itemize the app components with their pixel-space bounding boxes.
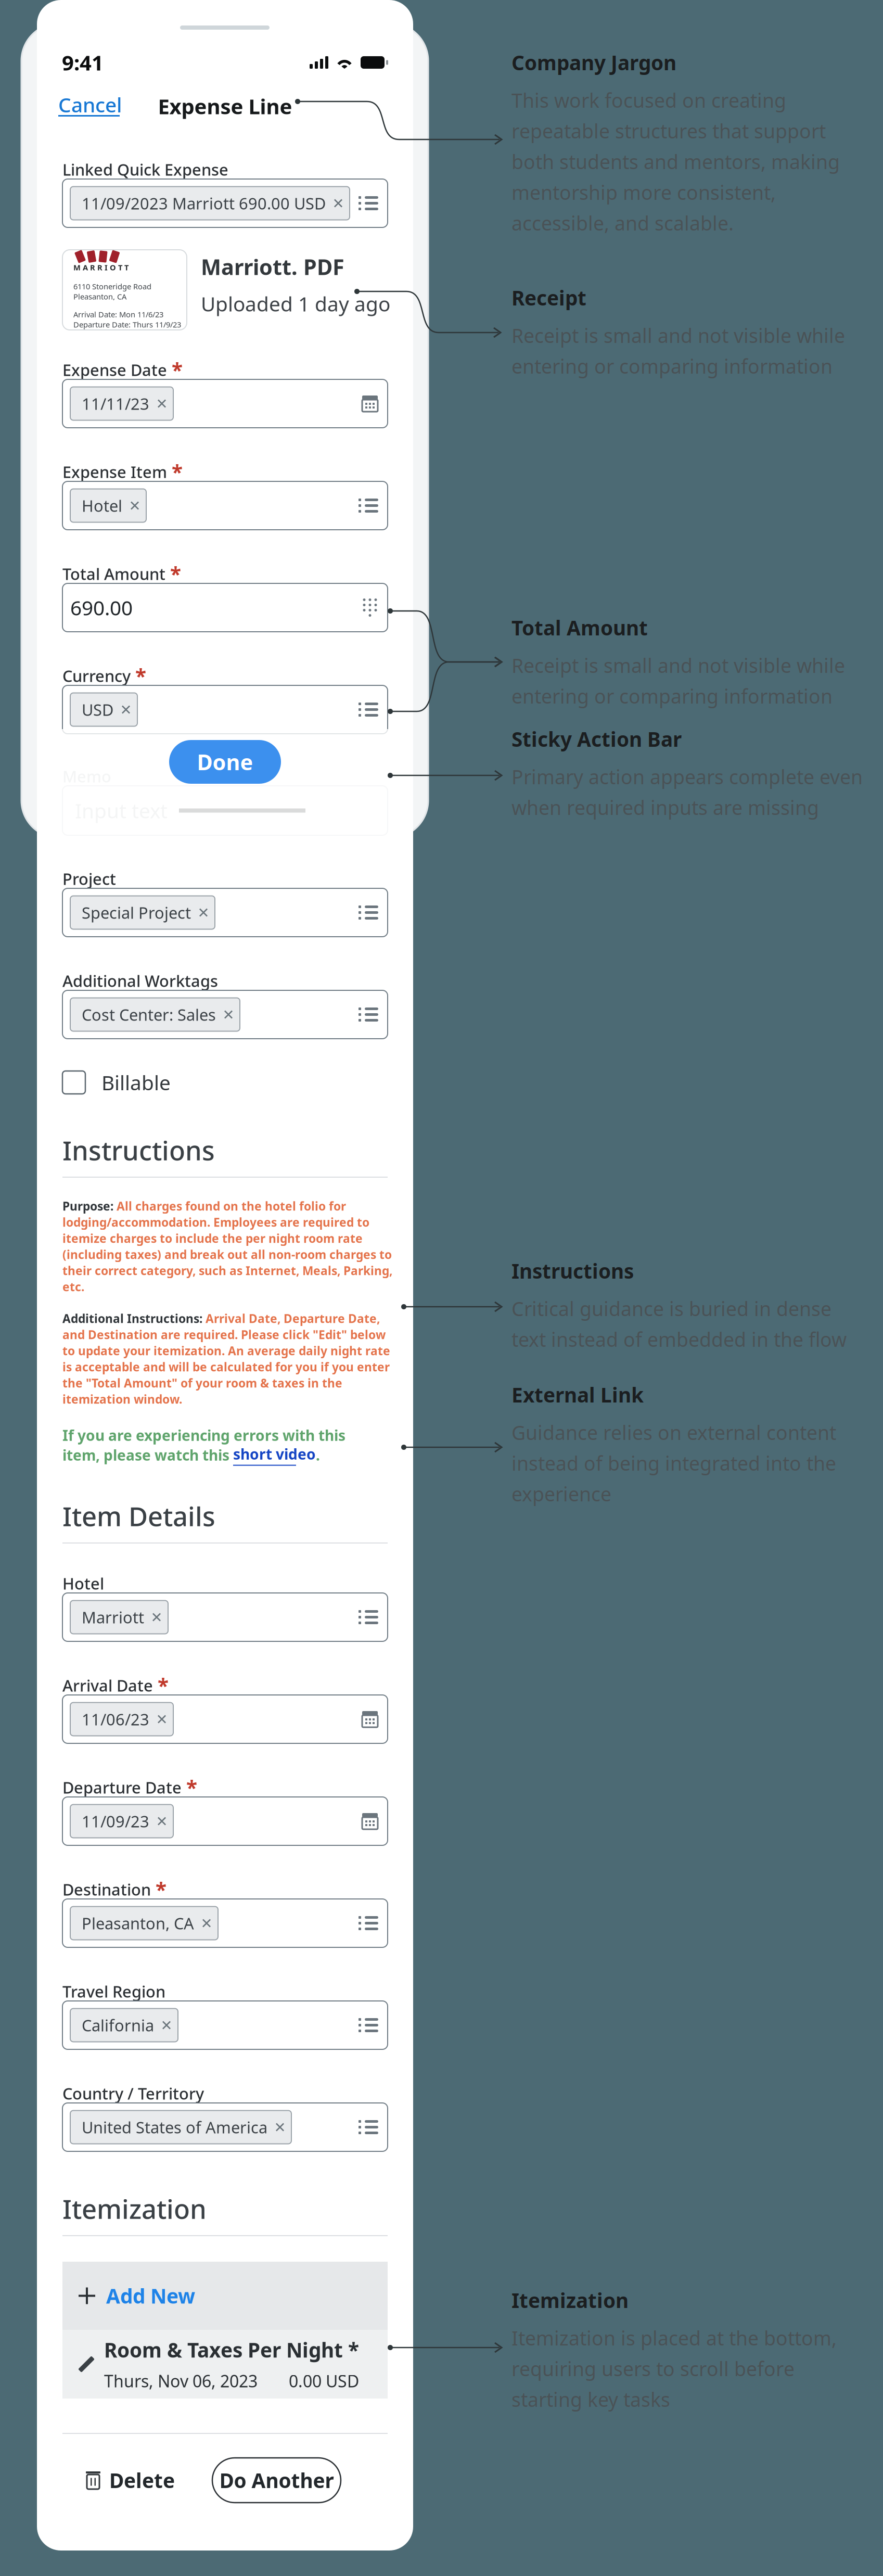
button[interactable]: Input text (62, 786, 388, 835)
staticText: accessible, and scalable. (511, 210, 734, 236)
button[interactable]: short video (233, 1444, 316, 1466)
staticText: Purpose: (62, 1198, 117, 1214)
staticText: Expense Line (158, 92, 292, 120)
staticText: etc. (62, 1279, 84, 1295)
button[interactable]: Special Project (62, 888, 388, 937)
staticText: short video (233, 1444, 316, 1464)
staticText: Itemization (62, 2191, 207, 2226)
staticText: Item Details (62, 1498, 215, 1533)
button[interactable]: Hotel (62, 481, 388, 530)
staticText: This work focused on creating (511, 87, 786, 113)
staticText: Hotel (62, 1573, 104, 1594)
staticText: Thurs, Nov 06, 2023 (104, 2370, 258, 2392)
staticText: Pleasanton, CA (82, 1913, 194, 1934)
staticText: when required inputs are missing (511, 795, 819, 820)
staticText: both students and mentors, making (511, 149, 840, 174)
staticText: Uploaded 1 day ago (201, 290, 390, 317)
staticText: 11/09/23 (82, 1811, 149, 1832)
staticText: Special Project (82, 902, 191, 923)
button[interactable]: Billable (62, 1071, 388, 1094)
staticText: If you are experiencing errors with this (62, 1426, 345, 1445)
staticText: Instructions (511, 1257, 634, 1284)
button[interactable]: Add New (62, 2262, 388, 2330)
staticText: itemization window. (62, 1391, 182, 1407)
button[interactable]: 11/09/2023 Marriott 690.00 USD (62, 179, 388, 227)
staticText: Additional Worktags (62, 970, 218, 991)
button[interactable]: USD (62, 685, 388, 734)
button[interactable]: Cancel (58, 96, 122, 117)
button[interactable]: United States of America (62, 2103, 388, 2151)
staticText: USD (82, 699, 113, 720)
staticText: entering or comparing information (511, 353, 833, 379)
staticText: Marriott (82, 1607, 144, 1628)
staticText: their correct category, such as Internet… (62, 1263, 392, 1278)
staticText: Sticky Action Bar (511, 726, 682, 752)
staticText: Receipt is small and not visible while (511, 652, 845, 678)
staticText: Add New (106, 2282, 195, 2309)
staticText: Primary action appears complete even (511, 764, 863, 790)
staticText: is acceptable and will be calculated for… (62, 1359, 390, 1375)
staticText: mentorship more consistent, (511, 179, 776, 205)
button[interactable]: 11/11/23 (62, 379, 388, 428)
staticText: repeatable structures that support (511, 118, 826, 144)
staticText: requiring users to scroll before (511, 2356, 795, 2382)
staticText: to update your itemization. An average d… (62, 1343, 390, 1359)
staticText: All charges found on the hotel folio for (117, 1198, 346, 1214)
staticText: United States of America (82, 2117, 267, 2138)
button[interactable]: Marriott (62, 1593, 388, 1641)
button[interactable]: Room & Taxes Per Night * (62, 2330, 388, 2399)
button[interactable]: Done (169, 740, 281, 784)
staticText: External Link (511, 1381, 644, 1408)
staticText: Receipt is small and not visible while (511, 322, 845, 348)
staticText: Guidance relies on external content (511, 1420, 836, 1445)
staticText: Company Jargon (511, 49, 676, 76)
staticText: . (316, 1445, 320, 1465)
staticText: Arrival Date: Mon 11/6/23 (73, 309, 163, 319)
staticText: 690.00 (70, 594, 133, 621)
staticText: * (172, 356, 183, 383)
staticText: Project (62, 868, 116, 889)
staticText: Hotel (82, 495, 122, 516)
button[interactable]: 11/06/23 (62, 1695, 388, 1743)
button[interactable]: Delete (85, 2458, 175, 2503)
button[interactable]: Pleasanton, CA (62, 1899, 388, 1947)
staticText: item, please watch this (62, 1445, 233, 1465)
staticText: experience (511, 1481, 611, 1507)
button[interactable]: California (62, 2001, 388, 2049)
staticText: instead of being integrated into the (511, 1450, 836, 1476)
button[interactable]: 11/09/23 (62, 1797, 388, 1845)
staticText: * (172, 458, 183, 485)
staticText: Travel Region (62, 1981, 165, 2002)
staticText: Total Amount (511, 614, 648, 641)
staticText: entering or comparing information (511, 683, 833, 709)
staticText: Billable (101, 1069, 171, 1096)
staticText: Instructions (62, 1133, 215, 1168)
staticText: itemize charges to include the per night… (62, 1230, 363, 1246)
staticText: Total Amount (62, 563, 165, 584)
button[interactable]: Do Another (212, 2458, 341, 2503)
staticText: * (156, 1876, 167, 1903)
staticText: Itemization (511, 2287, 629, 2314)
staticText: Currency (62, 665, 131, 686)
staticText: Destination (62, 1879, 151, 1900)
staticText: Memo (62, 766, 111, 787)
button[interactable]: Cost Center: Sales (62, 990, 388, 1039)
staticText: Expense Item (62, 461, 167, 482)
staticText: 9:41 (62, 49, 104, 76)
staticText: Departure Date (62, 1777, 182, 1798)
staticText: Itemization is placed at the bottom, (511, 2325, 837, 2351)
staticText: Receipt (511, 284, 586, 311)
staticText: Marriott. PDF (201, 252, 344, 281)
staticText: 11/09/2023 Marriott 690.00 USD (82, 193, 326, 214)
staticText: Country / Territory (62, 2083, 204, 2104)
staticText: * (170, 560, 181, 587)
staticText: Cancel (58, 91, 122, 118)
staticText: M A R R I O T T (73, 262, 129, 272)
staticText: 0.00 USD (289, 2370, 359, 2392)
button[interactable]: 690.00 (62, 583, 388, 632)
staticText: the "Total Amount" of your room & taxes … (62, 1375, 342, 1391)
staticText: Linked Quick Expense (62, 159, 228, 180)
staticText: Input text (75, 797, 168, 824)
staticText: California (82, 2015, 154, 2036)
staticText: 6110 Stoneridge Road (73, 281, 151, 291)
